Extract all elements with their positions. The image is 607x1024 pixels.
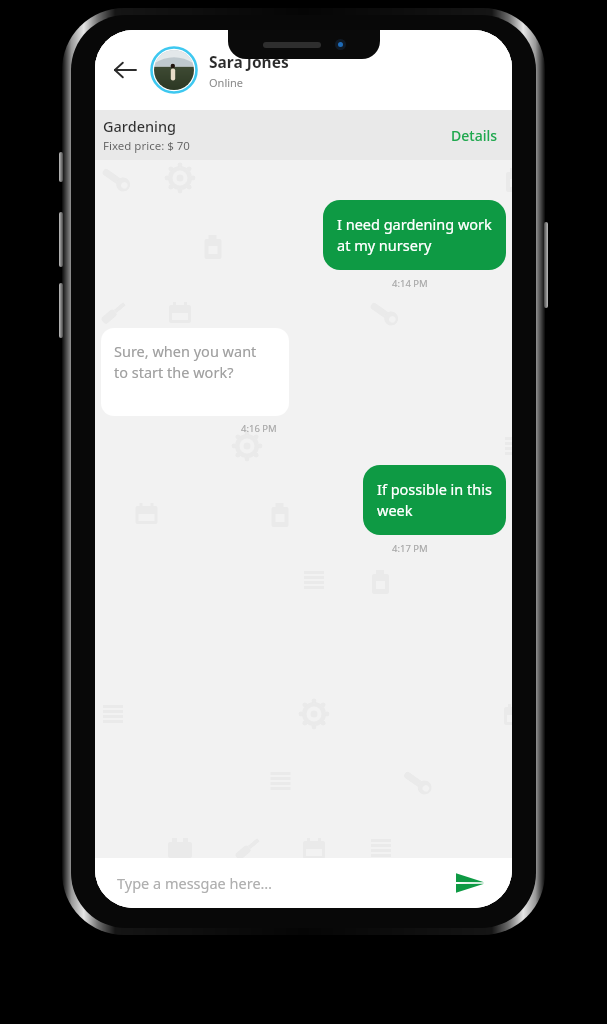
staticText: Sure, when you want to start the work? xyxy=(114,341,257,383)
button[interactable]: Sure, when you want to start the work? xyxy=(101,328,289,416)
staticText: 4:14 PM xyxy=(392,277,428,290)
staticText: Type a messgae here… xyxy=(117,873,273,893)
staticText: If possible in this week xyxy=(377,479,492,521)
staticText: Online xyxy=(209,75,244,90)
staticText: Fixed price: $ 70 xyxy=(103,138,190,154)
button[interactable]: I need gardening work at my nursery xyxy=(323,200,506,270)
staticText: Details xyxy=(451,126,498,145)
staticText: Sara Jones xyxy=(209,51,289,72)
button[interactable]: If possible in this week xyxy=(363,465,506,535)
staticText: 4:16 PM xyxy=(241,422,277,435)
button[interactable]: Type a messgae here… xyxy=(117,873,450,893)
button[interactable]: Back xyxy=(103,48,147,92)
button[interactable]: Send xyxy=(450,863,490,903)
button[interactable]: Details xyxy=(445,122,504,149)
staticText: Gardening xyxy=(103,116,177,136)
staticText: 4:17 PM xyxy=(392,542,428,555)
staticText: I need gardening work at my nursery xyxy=(337,214,492,256)
